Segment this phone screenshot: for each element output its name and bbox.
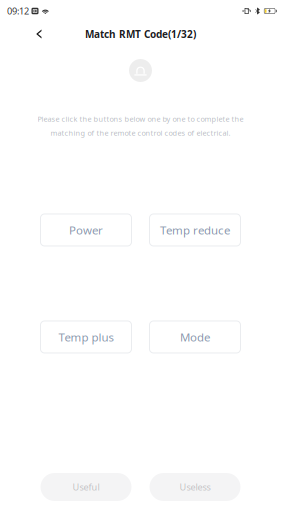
staticText: matching of the remote control codes of … bbox=[50, 128, 230, 138]
staticText: Temp reduce bbox=[160, 222, 230, 238]
staticText: Useless bbox=[179, 481, 210, 493]
button[interactable]: Back bbox=[27, 23, 51, 45]
button[interactable]: Temp reduce bbox=[149, 214, 240, 246]
button[interactable]: Power bbox=[40, 214, 131, 246]
button[interactable]: Mode bbox=[149, 321, 240, 353]
button[interactable]: Useful bbox=[40, 473, 131, 501]
staticText: Mode bbox=[180, 329, 210, 345]
staticText: 09:12 bbox=[7, 5, 29, 17]
staticText: Power bbox=[69, 222, 103, 238]
button[interactable]: Temp plus bbox=[40, 321, 131, 353]
button[interactable]: Useless bbox=[149, 473, 240, 501]
staticText: Temp plus bbox=[58, 329, 113, 345]
staticText: Match RMT Code(1/32) bbox=[85, 27, 196, 41]
staticText: Useful bbox=[72, 481, 99, 493]
staticText: Please click the buttons below one by on… bbox=[37, 114, 243, 124]
